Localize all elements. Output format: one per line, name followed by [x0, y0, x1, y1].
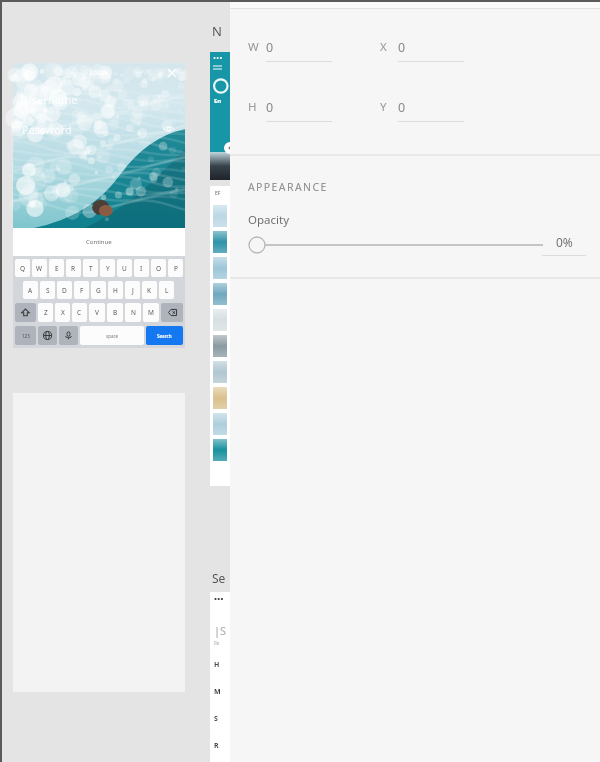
- button[interactable]: [213, 361, 227, 383]
- staticText: 0: [266, 99, 274, 116]
- button[interactable]: [213, 413, 227, 435]
- staticText: L: [165, 286, 169, 295]
- staticText: space: [106, 333, 119, 339]
- staticText: Search: [157, 333, 172, 339]
- staticText: APPEARANCE: [248, 180, 328, 194]
- button[interactable]: [213, 335, 227, 357]
- button[interactable]: A: [23, 281, 38, 299]
- staticText: P: [174, 264, 178, 273]
- staticText: M: [214, 687, 221, 697]
- staticText: H: [248, 99, 266, 115]
- button[interactable]: R: [66, 259, 81, 277]
- staticText: U: [122, 264, 127, 273]
- staticText: LOGIN: [90, 70, 109, 77]
- staticText: EF: [215, 190, 221, 197]
- button[interactable]: [213, 387, 227, 409]
- button[interactable]: Emoji: [38, 326, 57, 345]
- button[interactable]: X: [55, 303, 70, 322]
- button[interactable]: M: [143, 303, 159, 322]
- button[interactable]: T: [83, 259, 98, 277]
- staticText: 0%: [556, 234, 573, 250]
- button[interactable]: F: [74, 281, 89, 299]
- button[interactable]: V: [89, 303, 105, 322]
- button[interactable]: J: [125, 281, 140, 299]
- staticText: N: [131, 308, 136, 317]
- button[interactable]: H: [108, 281, 123, 299]
- button[interactable]: W: [32, 259, 47, 277]
- staticText: G: [96, 286, 101, 295]
- button[interactable]: K: [142, 281, 157, 299]
- staticText: Opacity: [248, 212, 290, 228]
- button[interactable]: Backspace: [161, 303, 183, 322]
- button[interactable]: Y: [100, 259, 115, 277]
- staticText: K: [147, 286, 152, 295]
- button[interactable]: [213, 231, 227, 253]
- button[interactable]: [213, 205, 227, 227]
- button[interactable]: Password: [22, 121, 176, 137]
- button[interactable]: Q: [15, 259, 30, 277]
- button[interactable]: O: [151, 259, 166, 277]
- button[interactable]: [213, 439, 227, 461]
- staticText: F: [80, 286, 84, 295]
- button[interactable]: [213, 309, 227, 331]
- button[interactable]: Show password: [162, 122, 176, 136]
- button[interactable]: P: [168, 259, 183, 277]
- staticText: C: [77, 308, 82, 317]
- staticText: I: [140, 264, 143, 273]
- button[interactable]: Back: [13, 63, 185, 348]
- button[interactable]: L: [159, 281, 174, 299]
- staticText: R: [214, 741, 219, 751]
- staticText: Password: [22, 122, 72, 137]
- button[interactable]: E: [49, 259, 64, 277]
- button[interactable]: Username: [22, 91, 176, 107]
- staticText: 123: [22, 333, 30, 339]
- button[interactable]: S: [40, 281, 55, 299]
- button[interactable]: N: [125, 303, 141, 322]
- button[interactable]: Continue: [13, 228, 185, 256]
- button[interactable]: Opacity slider: [248, 236, 534, 254]
- staticText: 0: [398, 99, 406, 116]
- button[interactable]: G: [91, 281, 106, 299]
- staticText: W: [36, 264, 43, 273]
- button[interactable]: Search: [146, 326, 183, 345]
- staticText: Q: [20, 264, 26, 273]
- button[interactable]: [213, 257, 227, 279]
- staticText: |S: [214, 623, 227, 638]
- button[interactable]: U: [117, 259, 132, 277]
- staticText: B: [113, 308, 118, 317]
- button[interactable]: C: [72, 303, 87, 322]
- staticText: T: [89, 264, 93, 273]
- button[interactable]: 123: [15, 326, 36, 345]
- button[interactable]: [213, 283, 227, 305]
- button[interactable]: Close: [165, 66, 179, 80]
- staticText: E: [55, 264, 59, 273]
- button[interactable]: Back: [19, 66, 33, 80]
- staticText: X: [61, 308, 65, 317]
- staticText: Username: [24, 92, 78, 107]
- staticText: S: [214, 714, 218, 724]
- button[interactable]: Dictation: [59, 326, 78, 345]
- staticText: Re: [214, 640, 220, 646]
- staticText: Y: [106, 264, 110, 273]
- staticText: H: [214, 660, 220, 670]
- button[interactable]: B: [107, 303, 123, 322]
- staticText: 0: [398, 39, 406, 56]
- button[interactable]: I: [134, 259, 149, 277]
- staticText: D: [62, 286, 67, 295]
- staticText: N: [212, 22, 222, 40]
- staticText: 0: [266, 39, 274, 56]
- staticText: R: [71, 264, 76, 273]
- staticText: X: [380, 39, 398, 55]
- staticText: Z: [44, 308, 48, 317]
- staticText: En: [214, 97, 222, 105]
- button[interactable]: Z: [38, 303, 53, 322]
- staticText: V: [95, 308, 99, 317]
- button[interactable]: space: [80, 326, 144, 345]
- staticText: J: [132, 286, 134, 295]
- staticText: O: [156, 264, 162, 273]
- button[interactable]: En: [210, 52, 230, 152]
- button[interactable]: D: [57, 281, 72, 299]
- button[interactable]: Shift: [15, 303, 36, 322]
- staticText: S: [46, 286, 50, 295]
